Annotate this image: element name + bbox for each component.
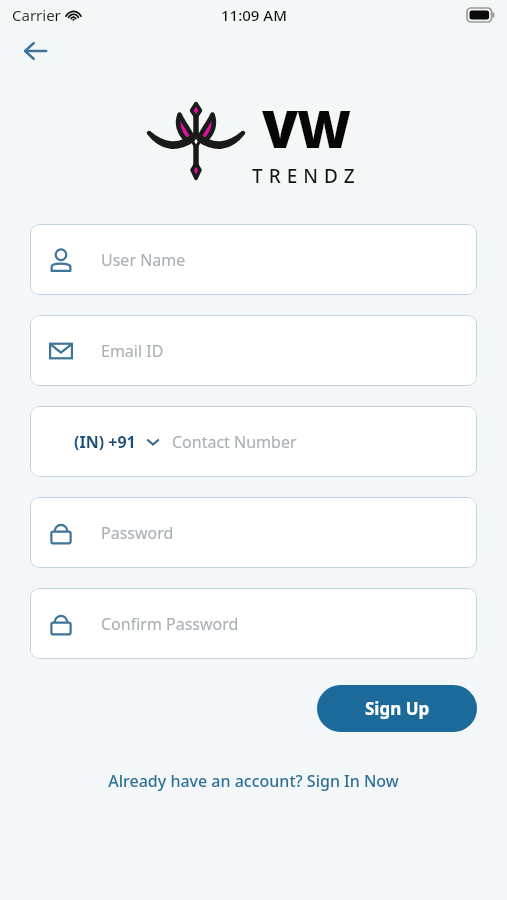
button[interactable]: Sign Up bbox=[317, 685, 477, 732]
staticText: 11:09 AM bbox=[221, 5, 287, 25]
button[interactable]: Email ID bbox=[30, 315, 477, 386]
staticText: Sign Up bbox=[365, 697, 430, 720]
staticText: (IN) +91 bbox=[74, 431, 136, 453]
button[interactable]: Already have an account? Sign In Now bbox=[96, 764, 411, 798]
button[interactable]: Confirm Password bbox=[30, 588, 477, 659]
staticText: Contact Number bbox=[172, 431, 297, 453]
button[interactable]: (IN) +91 bbox=[30, 406, 477, 477]
staticText: Password bbox=[101, 522, 174, 544]
staticText: TRENDZ bbox=[252, 163, 361, 189]
staticText: Email ID bbox=[101, 340, 164, 362]
button[interactable]: Password bbox=[30, 497, 477, 568]
staticText: Already have an account? Sign In Now bbox=[108, 770, 399, 792]
button[interactable]: Back bbox=[14, 30, 56, 72]
button[interactable]: User Name bbox=[30, 224, 477, 295]
staticText: Confirm Password bbox=[101, 613, 239, 635]
staticText: VW bbox=[262, 92, 351, 163]
staticText: Carrier bbox=[12, 5, 61, 25]
staticText: User Name bbox=[101, 249, 186, 271]
